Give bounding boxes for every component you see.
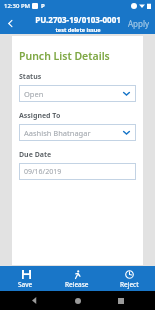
staticText: Status xyxy=(19,72,42,82)
staticText: Due Date xyxy=(19,150,52,160)
staticText: P xyxy=(41,2,45,10)
button[interactable]: Home xyxy=(68,291,88,310)
staticText: 09/16/2019 xyxy=(24,167,62,177)
staticText: Open xyxy=(24,89,44,99)
staticText: Reject xyxy=(120,280,139,289)
staticText: Punch List Details xyxy=(19,49,110,63)
button[interactable]: Back xyxy=(24,291,44,310)
staticText: test delete issue xyxy=(55,26,101,33)
button[interactable]: Aashish Bhatnagar xyxy=(19,124,136,141)
button[interactable]: Reject xyxy=(103,266,155,291)
staticText: Save xyxy=(18,280,33,289)
button[interactable]: Back xyxy=(0,13,20,33)
staticText: 12:30 PM xyxy=(4,2,31,10)
button[interactable]: Save xyxy=(0,266,51,291)
staticText: PU.2703-19/0103-0001 xyxy=(35,14,121,25)
staticText: Aashish Bhatnagar xyxy=(24,128,91,138)
button[interactable]: Open xyxy=(19,85,136,102)
button[interactable]: Apply xyxy=(123,14,155,33)
button[interactable]: 09/16/2019 xyxy=(19,163,136,180)
staticText: Assigned To xyxy=(19,111,61,121)
button[interactable]: Release xyxy=(51,266,103,291)
button[interactable]: Recent apps xyxy=(111,291,131,310)
staticText: Release xyxy=(65,280,89,289)
staticText: Apply xyxy=(128,18,150,29)
